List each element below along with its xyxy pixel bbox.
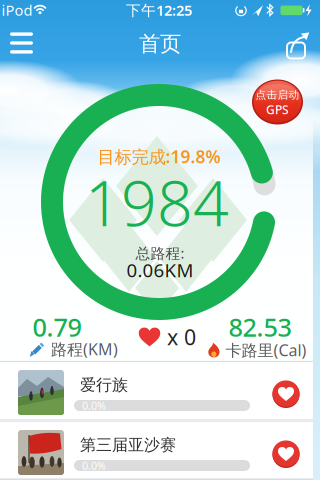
- button[interactable]: 喜欢: [272, 380, 300, 408]
- staticText: 目标完成:19.8%: [97, 145, 220, 168]
- button[interactable]: 分享: [281, 29, 311, 59]
- staticText: 1984: [85, 160, 229, 244]
- staticText: 首页: [139, 31, 181, 57]
- staticText: 0.0%: [82, 458, 106, 473]
- staticText: 爱行族: [80, 375, 128, 395]
- button[interactable]: 点击启动GPS: [251, 79, 303, 125]
- staticText: 0.79: [32, 310, 81, 344]
- button[interactable]: 爱行族: [0, 362, 313, 419]
- staticText: iPod: [1, 0, 32, 20]
- staticText: 0.06KM: [126, 258, 193, 282]
- staticText: 总路程:: [135, 243, 184, 263]
- staticText: 82.53: [228, 310, 291, 344]
- staticText: 第三届亚沙赛: [80, 435, 176, 455]
- button[interactable]: 喜欢: [272, 440, 300, 468]
- staticText: GPS: [266, 102, 289, 117]
- staticText: 下午12:25: [126, 0, 192, 20]
- staticText: 点击启动: [255, 88, 299, 102]
- staticText: x 0: [167, 323, 196, 351]
- staticText: 0.0%: [82, 398, 106, 413]
- button[interactable]: 第三届亚沙赛: [0, 422, 313, 479]
- button[interactable]: 菜单: [1, 23, 41, 63]
- staticText: 路程(KM): [51, 338, 118, 360]
- staticText: 卡路里(Cal): [225, 339, 306, 361]
